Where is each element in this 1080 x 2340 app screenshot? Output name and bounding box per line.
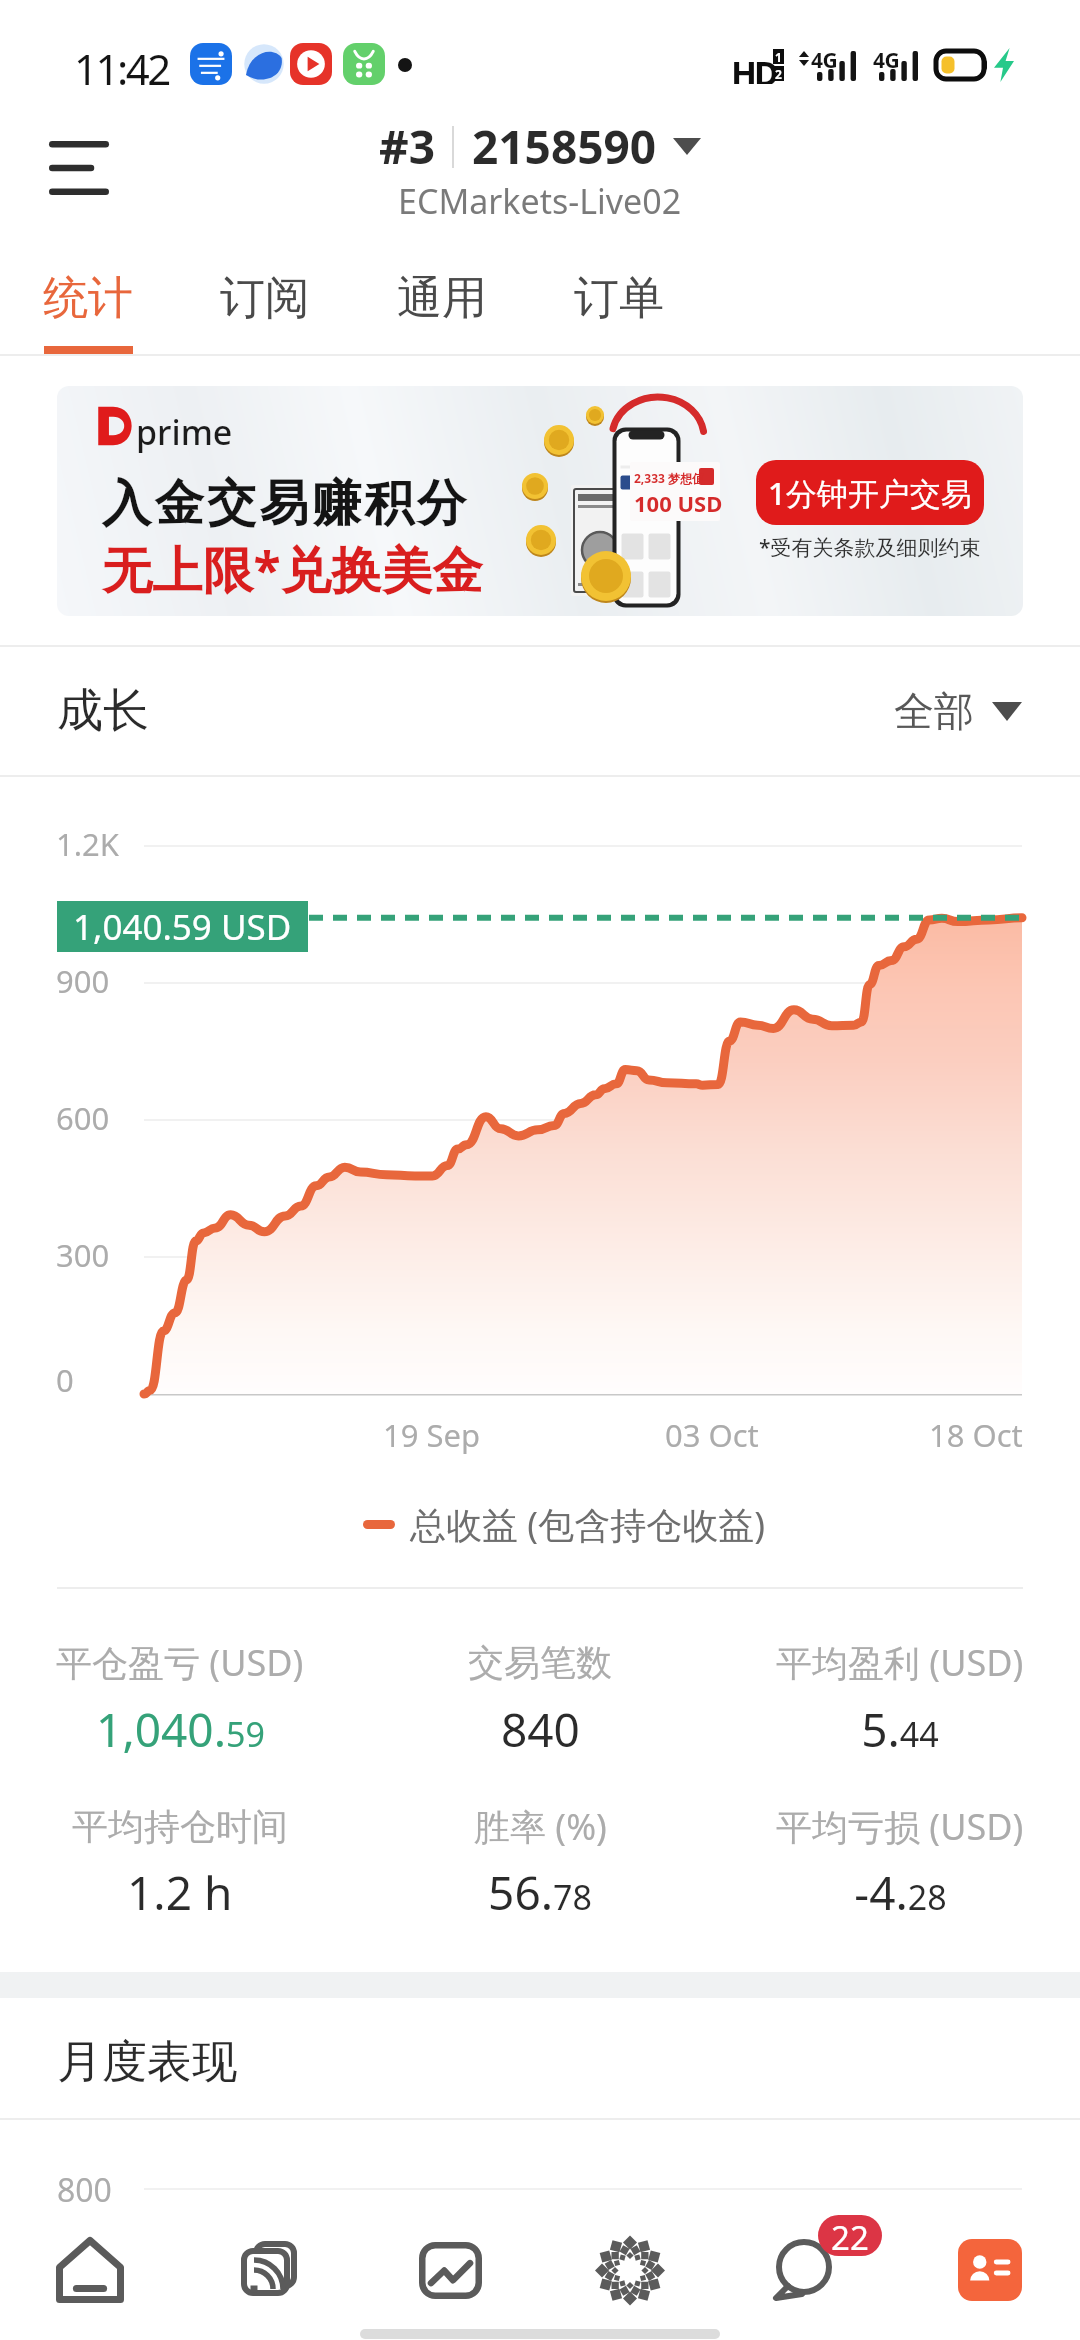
button[interactable]: Accounts: [900, 2208, 1080, 2332]
staticText: 18 Oct: [929, 1414, 1023, 1456]
staticText: ECMarkets-Live02: [398, 178, 682, 224]
button[interactable]: Trade: [540, 2208, 720, 2332]
staticText: 1.2 h: [127, 1861, 233, 1924]
staticText: 56.78: [488, 1861, 592, 1924]
button[interactable]: Quotes: [180, 2208, 360, 2332]
button[interactable]: 通用: [354, 245, 530, 354]
staticText: 胜率 (%): [474, 1802, 607, 1851]
staticText: 840: [501, 1698, 580, 1761]
staticText: 统计: [43, 270, 133, 327]
staticText: 订阅: [220, 270, 310, 327]
staticText: 全部: [894, 686, 974, 736]
staticText: 0: [56, 1359, 74, 1401]
staticText: -4.28: [854, 1861, 947, 1924]
staticText: 03 Oct: [665, 1414, 759, 1456]
staticText: #3: [379, 115, 436, 178]
staticText: 平均持仓时间: [72, 1804, 288, 1849]
button[interactable]: Charts: [360, 2208, 540, 2332]
staticText: 600: [56, 1097, 110, 1139]
staticText: 22: [831, 2215, 869, 2256]
staticText: 1,040.59: [96, 1698, 265, 1761]
button[interactable]: prime: [57, 386, 1023, 616]
staticText: prime: [136, 409, 233, 455]
staticText: 5.44: [861, 1698, 939, 1761]
staticText: *受有关条款及细则约束: [759, 533, 981, 562]
staticText: 1: [775, 49, 782, 64]
staticText: 900: [56, 960, 110, 1002]
button[interactable]: 订单: [531, 245, 707, 354]
staticText: 11:42: [74, 40, 169, 97]
staticText: 平均亏损 (USD): [776, 1802, 1024, 1851]
staticText: 入金交易赚积分: [102, 473, 470, 535]
staticText: 4G: [811, 46, 838, 75]
button[interactable]: Messages: [720, 2208, 900, 2332]
button[interactable]: 订阅: [177, 245, 353, 354]
staticText: HD: [731, 50, 776, 84]
staticText: 无上限*兑换美金: [102, 535, 484, 603]
staticText: 4G: [873, 46, 900, 75]
staticText: 1.2K: [56, 823, 119, 865]
staticText: 2,333 梦想值: [634, 470, 704, 486]
staticText: 成长: [57, 682, 149, 740]
button[interactable]: #3: [379, 115, 701, 224]
staticText: 19 Sep: [383, 1414, 481, 1456]
staticText: 1,040.59 USD: [73, 903, 292, 951]
staticText: 平均盈利 (USD): [776, 1638, 1024, 1687]
staticText: 订单: [574, 270, 664, 327]
button[interactable]: Menu: [0, 100, 158, 235]
staticText: 2: [775, 66, 782, 81]
staticText: 通用: [397, 270, 487, 327]
staticText: 交易笔数: [468, 1640, 612, 1685]
button[interactable]: 全部: [894, 686, 1022, 736]
staticText: 800: [57, 2168, 112, 2212]
staticText: 1分钟开户交易: [768, 472, 972, 514]
staticText: 300: [56, 1234, 110, 1276]
staticText: 平仓盈亏 (USD): [56, 1638, 304, 1687]
button[interactable]: 统计: [0, 245, 176, 354]
button[interactable]: Home: [0, 2208, 180, 2332]
staticText: 总收益 (包含持仓收益): [410, 1500, 765, 1549]
staticText: 2158590: [472, 115, 657, 178]
staticText: 月度表现: [57, 2034, 237, 2091]
staticText: 100 USD: [634, 488, 723, 518]
